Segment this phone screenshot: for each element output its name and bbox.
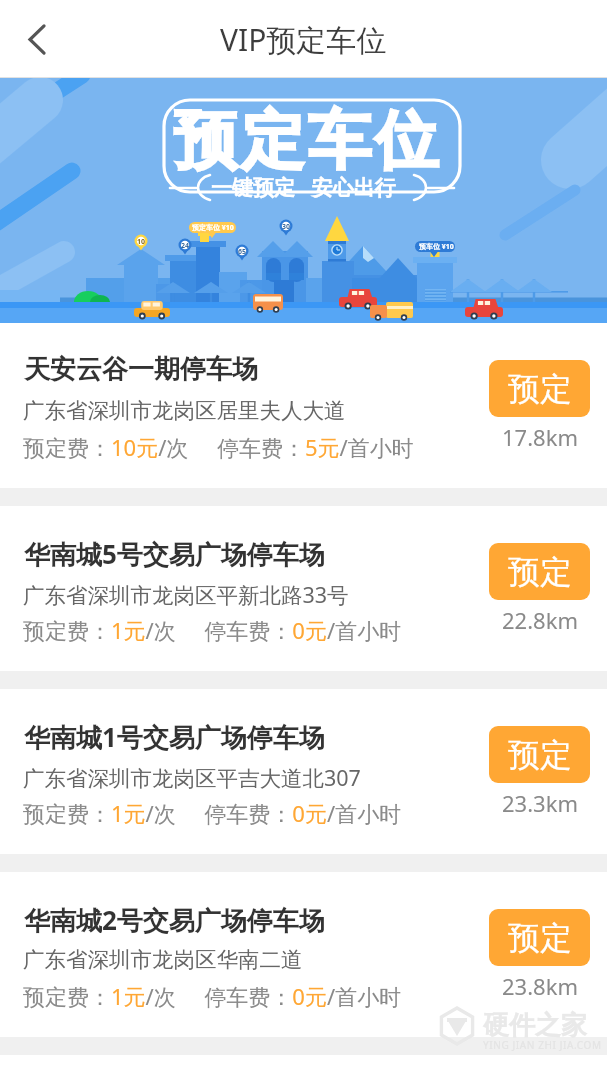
staticText: YING JIAN ZHI JIA.COM [483,1038,602,1052]
staticText: 硬件之家 [483,1009,587,1042]
button[interactable]: 预定 [489,360,590,417]
button[interactable]: 华南城1号交易广场停车场 [0,689,607,854]
staticText: 华南城1号交易广场停车场 [24,719,325,755]
staticText: 17.8km [502,422,578,452]
staticText: 10 [137,237,146,247]
staticText: 天安云谷一期停车场 [24,353,258,386]
staticText: 预定费：1元/次 停车费：0元/首小时 [23,615,402,645]
button[interactable]: 华南城5号交易广场停车场 [0,506,607,671]
button[interactable]: 天安云谷一期停车场 [0,323,607,488]
button[interactable]: 华南城2号交易广场停车场 [0,872,607,1037]
staticText: 华南城2号交易广场停车场 [24,902,325,938]
staticText: 预定费：1元/次 停车费：0元/首小时 [23,798,402,828]
staticText: 22.8km [502,605,578,635]
staticText: 预定 [508,735,572,775]
staticText: 广东省深圳市龙岗区华南二道 [23,946,303,973]
button[interactable]: Back [0,0,74,78]
staticText: 30 [282,222,291,232]
staticText: 23.3km [502,788,578,818]
staticText: 预车位 ¥10 [419,242,454,252]
staticText: 广东省深圳市龙岗区平新北路33号 [23,580,349,609]
staticText: 23.8km [502,971,578,1001]
staticText: 华南城5号交易广场停车场 [24,536,325,572]
staticText: 广东省深圳市龙岗区居里夫人大道 [23,397,346,424]
staticText: 预定费：10元/次 停车费：5元/首小时 [23,432,414,462]
staticText: 一键预定 安心出行 [211,173,396,202]
staticText: 广东省深圳市龙岗区平吉大道北307 [23,763,361,792]
staticText: 预定 [508,369,572,409]
staticText: 65 [238,247,247,257]
button[interactable]: 预定 [489,726,590,783]
staticText: 预定车位 [172,101,440,180]
staticText: 预定 [508,552,572,592]
button[interactable]: 预定 [489,909,590,966]
staticText: 预定费：1元/次 停车费：0元/首小时 [23,981,402,1011]
staticText: VIP预定车位 [220,19,387,60]
staticText: 24 [181,241,190,251]
button[interactable]: 预定 [489,543,590,600]
staticText: 预定 [508,918,572,958]
staticText: 预定车位 ¥10 [192,223,234,233]
